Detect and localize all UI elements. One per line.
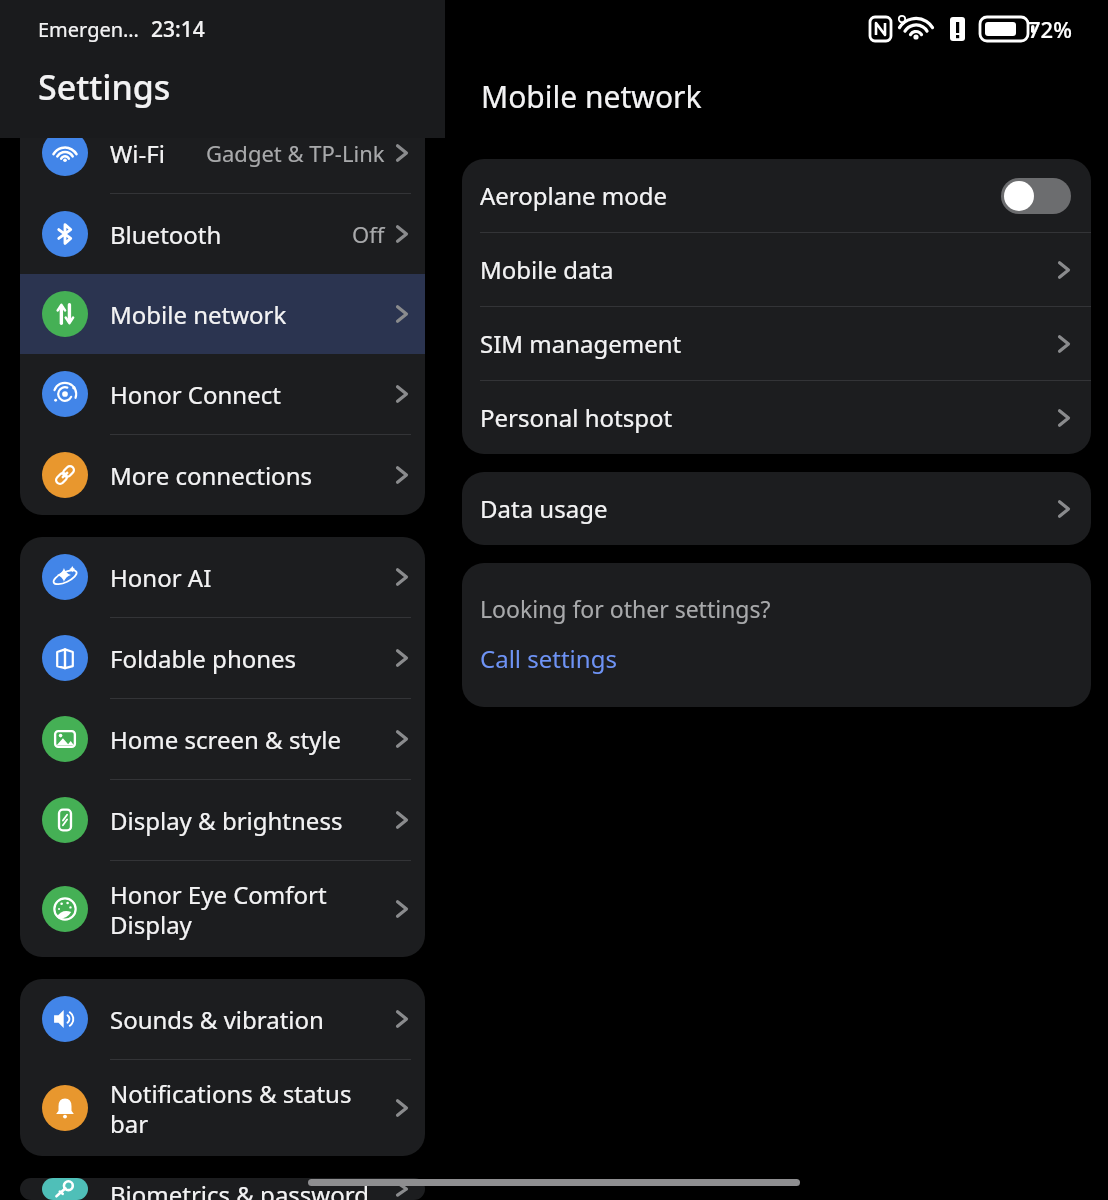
button[interactable]: Home screen & style [20,699,425,779]
staticText: Data usage [480,492,608,525]
button[interactable]: Mobile data [462,233,1091,306]
button[interactable]: Notifications & status bar [20,1060,425,1156]
button[interactable]: Wi-Fi [20,113,425,193]
staticText: Honor Eye Comfort Display [110,878,395,941]
staticText: Honor Connect [110,378,281,411]
button[interactable]: Biometrics & password [20,1178,425,1200]
button[interactable]: Mobile network [20,274,425,354]
staticText: Foldable phones [110,642,297,675]
staticText: Honor AI [110,561,212,594]
button[interactable]: Honor AI [20,537,425,617]
button[interactable]: Foldable phones [20,618,425,698]
button[interactable]: Personal hotspot [462,381,1091,454]
staticText: Bluetooth [110,218,222,251]
button[interactable]: SIM management [462,307,1091,380]
staticText: 72% [1028,14,1072,44]
button[interactable]: Display & brightness [20,780,425,860]
staticText: Emergen… [38,16,139,43]
staticText: Off [352,219,385,249]
staticText: Display & brightness [110,804,343,837]
button[interactable]: Data usage [462,472,1091,545]
button[interactable]: Bluetooth [20,194,425,274]
button[interactable]: Aeroplane mode [462,159,1091,232]
staticText: Wi-Fi [110,137,165,170]
staticText: Looking for other settings? [480,593,771,624]
staticText: More connections [110,459,312,492]
button[interactable]: Honor Eye Comfort Display [20,861,425,957]
staticText: Notifications & status bar [110,1077,395,1140]
staticText: Call settings [480,642,617,675]
button[interactable]: Call settings [480,642,617,675]
staticText: Biometrics & password [110,1178,369,1200]
button[interactable]: Honor Connect [20,354,425,434]
button[interactable]: Sounds & vibration [20,979,425,1059]
button[interactable]: Aeroplane mode [1001,178,1071,214]
staticText: Mobile data [480,253,614,286]
staticText: Mobile network [110,298,287,331]
staticText: 23:14 [151,15,205,44]
staticText: Sounds & vibration [110,1003,324,1036]
staticText: Personal hotspot [480,401,673,434]
button[interactable]: More connections [20,435,425,515]
staticText: Aeroplane mode [480,179,668,212]
staticText: Settings [38,64,171,110]
staticText: SIM management [480,327,682,360]
staticText: Mobile network [481,76,702,117]
staticText: Gadget & TP-Link [206,138,385,168]
staticText: Home screen & style [110,723,342,756]
